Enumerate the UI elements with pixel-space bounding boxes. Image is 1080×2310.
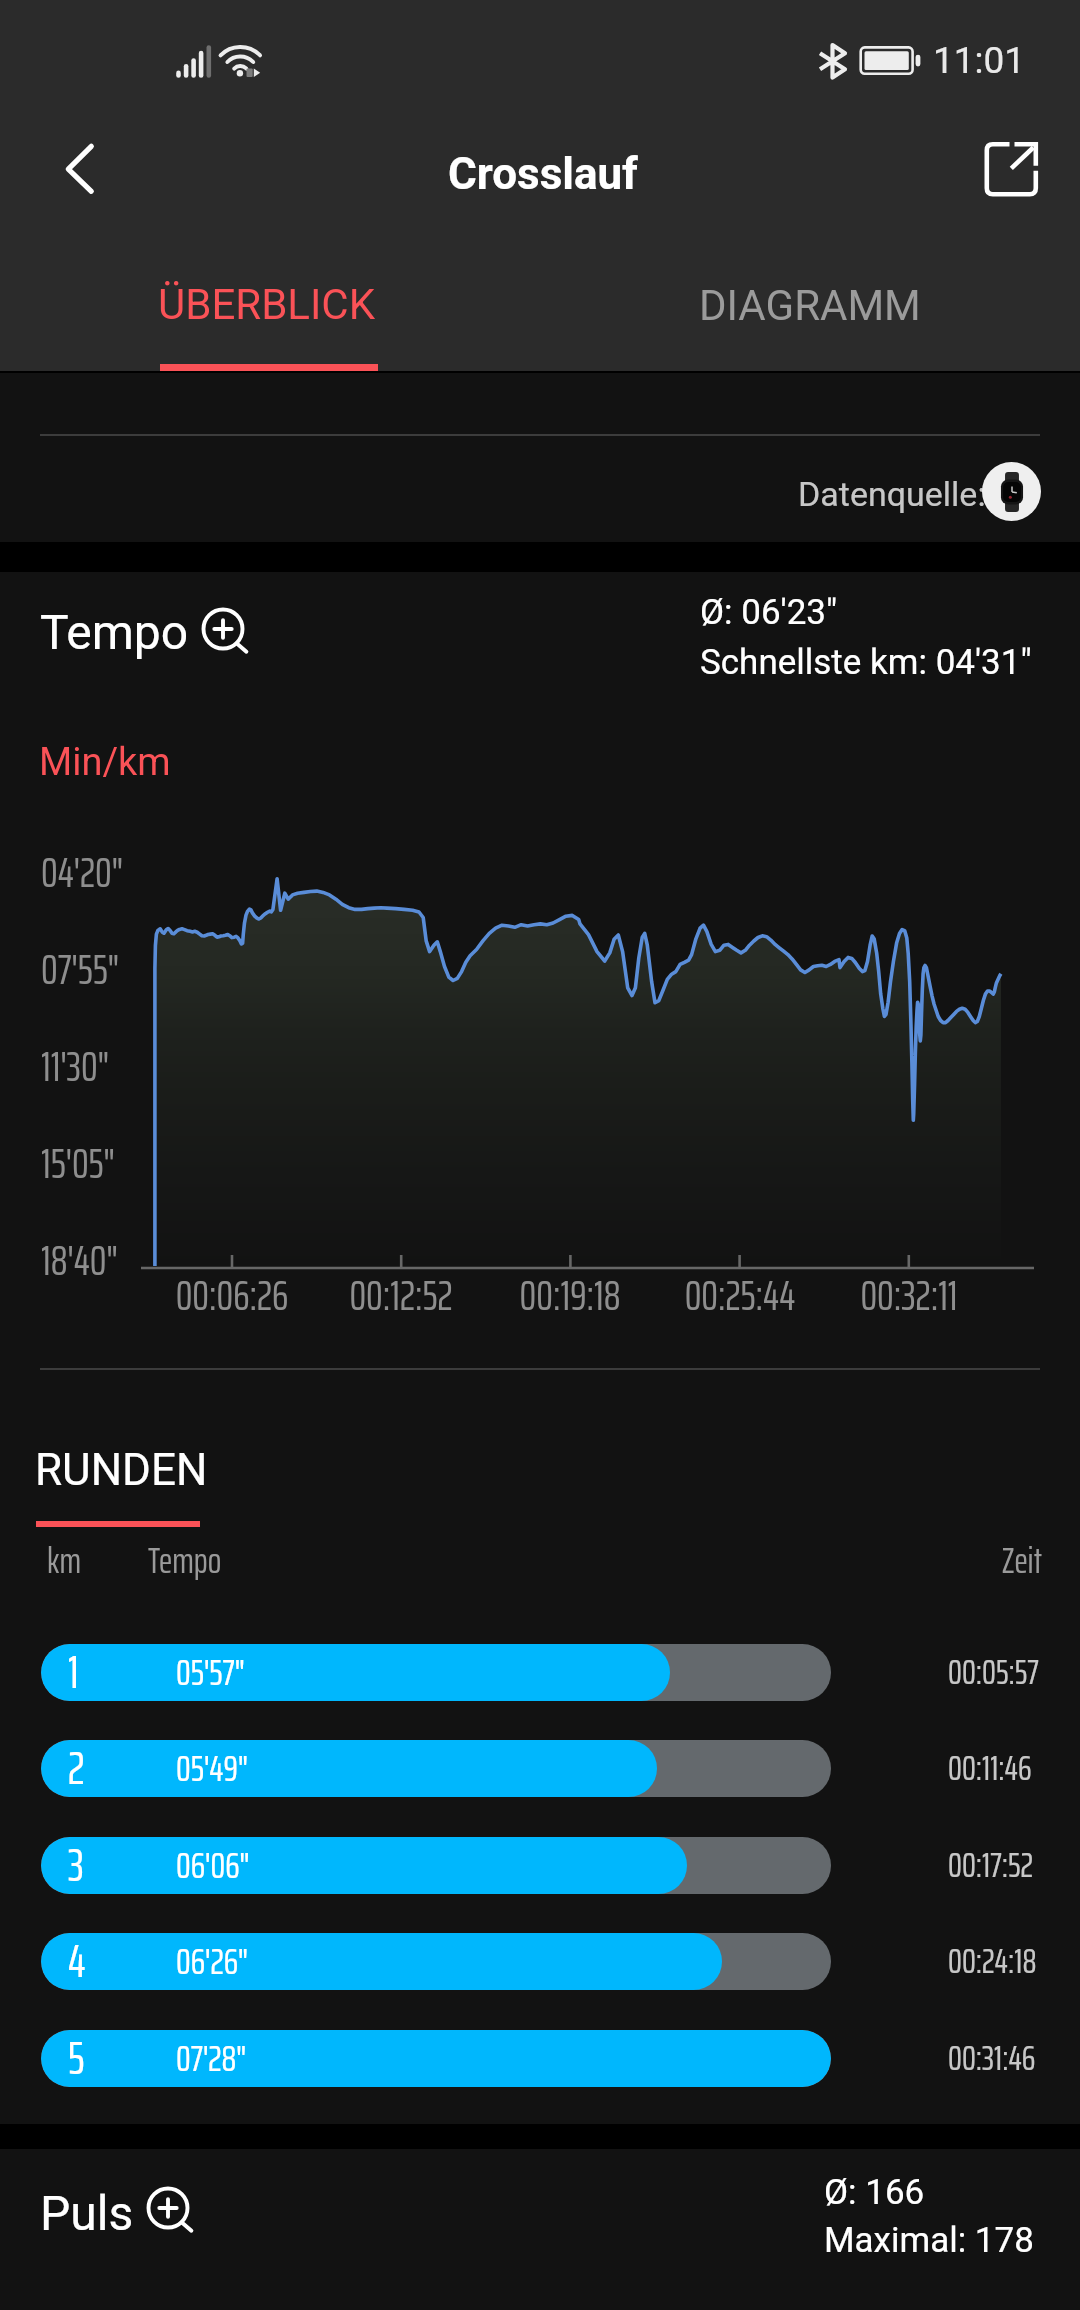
button[interactable]: Tempo, enlarge pace chart	[34, 596, 259, 664]
staticText: 06'26"	[176, 1933, 248, 1989]
staticText: 3	[68, 1837, 84, 1886]
staticText: 07'28"	[176, 2030, 247, 2086]
button[interactable]: 4	[0, 1933, 1080, 1990]
staticText: DIAGRAMM	[699, 281, 921, 330]
staticText: 05'49"	[176, 1740, 248, 1796]
button[interactable]: 3	[0, 1837, 1080, 1894]
staticText: 15'05"	[41, 1130, 115, 1196]
staticText: 00:05:57	[948, 1644, 1039, 1699]
button[interactable]: ÜBERBLICK	[0, 245, 540, 371]
staticText: Maximal: 178	[824, 2220, 1034, 2261]
button[interactable]: 5	[0, 2030, 1080, 2087]
staticText: 00:24:18	[948, 1933, 1037, 1988]
staticText: Crosslauf	[448, 148, 638, 200]
staticText: km	[47, 1532, 82, 1589]
button[interactable]: Back	[0, 110, 155, 245]
staticText: Tempo	[40, 604, 189, 660]
button[interactable]: Data source: watch	[982, 462, 1041, 521]
staticText: 04'20"	[41, 839, 123, 905]
staticText: 00:12:52	[291, 1262, 511, 1328]
staticText: Datenquelle:	[798, 474, 986, 514]
button[interactable]: 1	[0, 1644, 1080, 1701]
staticText: 5	[68, 2030, 85, 2079]
button[interactable]: DIAGRAMM	[540, 245, 1080, 371]
button[interactable]: Share	[935, 110, 1080, 245]
staticText: Min/km	[39, 740, 171, 785]
staticText: 05'57"	[176, 1644, 245, 1700]
staticText: 00:32:11	[799, 1262, 1019, 1328]
staticText: 00:17:52	[948, 1837, 1033, 1892]
staticText: 00:25:44	[630, 1262, 850, 1328]
staticText: Zeit	[960, 1532, 1042, 1589]
button[interactable]: Puls, enlarge heart-rate chart	[34, 2177, 204, 2245]
staticText: 11'30"	[41, 1033, 109, 1099]
staticText: Tempo	[148, 1532, 222, 1589]
staticText: Ø: 06'23"	[700, 592, 838, 633]
staticText: 4	[68, 1933, 86, 1982]
staticText: 00:31:46	[948, 2030, 1036, 2085]
staticText: Ø: 166	[824, 2172, 925, 2213]
staticText: 06'06"	[176, 1837, 250, 1893]
staticText: Puls	[40, 2185, 134, 2241]
button[interactable]: 2	[0, 1740, 1080, 1797]
staticText: ÜBERBLICK	[158, 280, 376, 329]
staticText: RUNDEN	[35, 1444, 208, 1496]
staticText: 2	[68, 1740, 85, 1789]
staticText: 1	[68, 1644, 79, 1693]
staticText: 00:11:46	[948, 1740, 1032, 1795]
staticText: 18'40"	[41, 1227, 118, 1293]
staticText: 07'55"	[41, 936, 119, 1002]
staticText: Schnellste km: 04'31"	[700, 642, 1032, 683]
staticText: 00:19:18	[460, 1262, 680, 1328]
staticText: 11:01	[933, 39, 1026, 82]
staticText: 00:06:26	[122, 1262, 342, 1328]
